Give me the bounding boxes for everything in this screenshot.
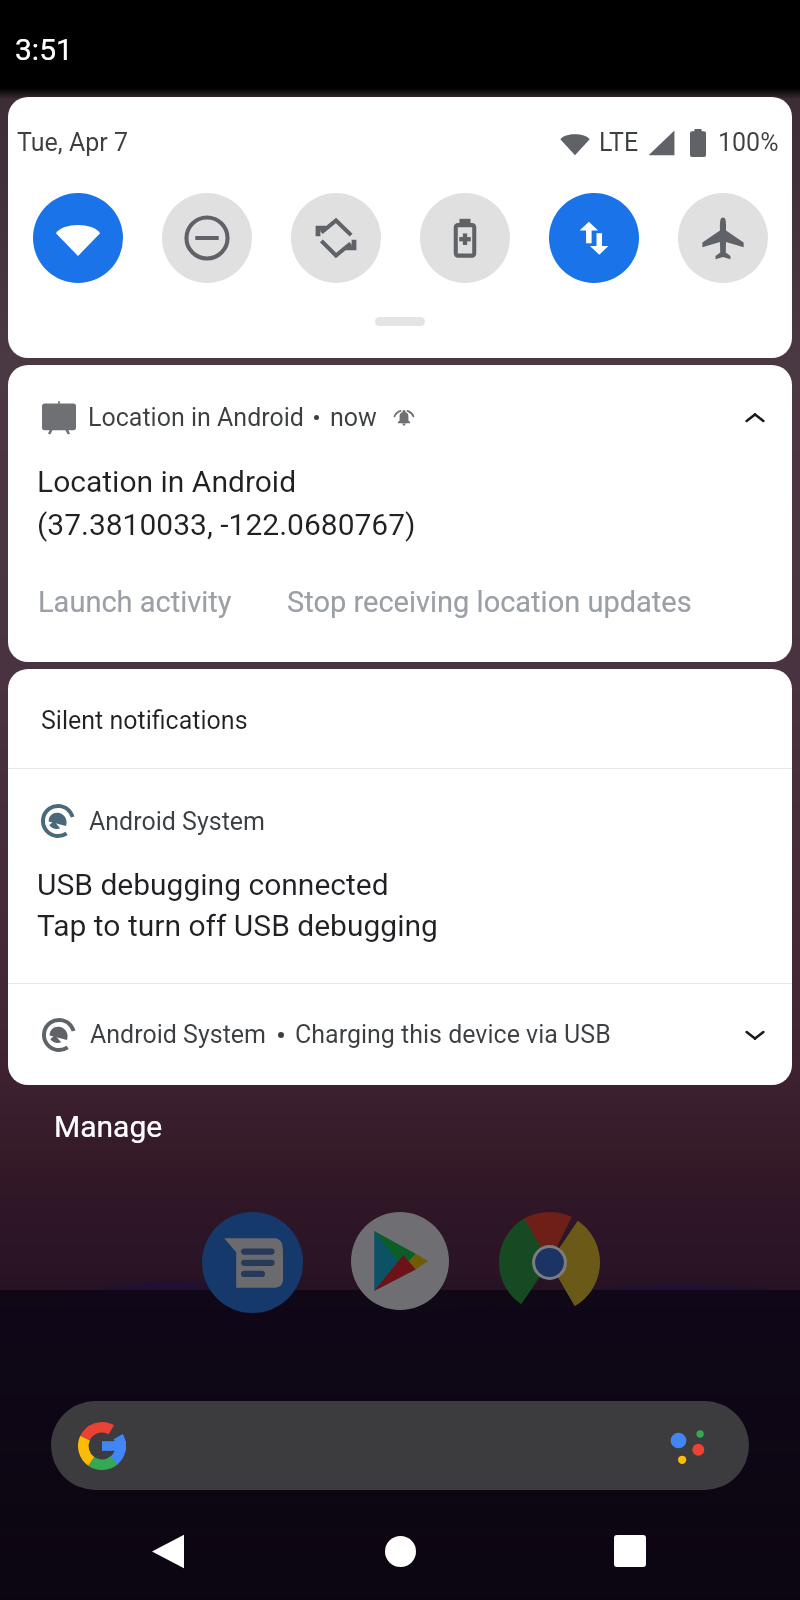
button[interactable]: Quick setting — [33, 193, 123, 283]
staticText: Android System — [89, 807, 266, 836]
staticText: 3:51 — [15, 32, 73, 67]
staticText: Tue, Apr 7 — [17, 128, 128, 157]
button[interactable]: Location in Android — [8, 365, 792, 662]
button[interactable]: Android System — [8, 769, 792, 983]
button[interactable]: Launch activity — [38, 585, 232, 619]
button[interactable]: Search — [51, 1401, 749, 1490]
button[interactable]: Recents — [580, 1510, 680, 1592]
staticText: Android System — [90, 1020, 267, 1049]
staticText: 100% — [718, 128, 779, 157]
button[interactable]: Quick setting — [678, 193, 768, 283]
staticText: LTE — [599, 128, 639, 157]
button[interactable]: Android System — [8, 984, 792, 1085]
staticText: Charging this device via USB — [295, 1020, 611, 1049]
staticText: now — [330, 403, 377, 432]
button[interactable]: Back — [118, 1510, 218, 1592]
button[interactable]: Expand — [740, 1020, 770, 1050]
staticText: Location in Android — [37, 464, 297, 499]
button[interactable]: Collapse — [740, 403, 770, 433]
staticText: Location in Android — [88, 403, 304, 432]
button[interactable]: Chrome — [499, 1212, 600, 1313]
button[interactable]: Quick setting — [549, 193, 639, 283]
button[interactable]: Home — [350, 1510, 450, 1592]
button[interactable]: Silent notifications — [8, 669, 792, 768]
staticText: Tap to turn off USB debugging — [37, 908, 438, 943]
button[interactable]: Stop receiving location updates — [287, 585, 692, 619]
button[interactable]: Play Store — [351, 1212, 449, 1310]
button[interactable]: Quick setting — [162, 193, 252, 283]
staticText: (37.3810033, -122.0680767) — [37, 507, 416, 542]
button[interactable]: Quick setting — [420, 193, 510, 283]
button[interactable]: Messages — [202, 1212, 303, 1313]
button[interactable]: Manage — [54, 1109, 163, 1144]
staticText: Silent notifications — [41, 706, 248, 735]
staticText: USB debugging connected — [37, 867, 389, 902]
button[interactable]: Quick setting — [291, 193, 381, 283]
